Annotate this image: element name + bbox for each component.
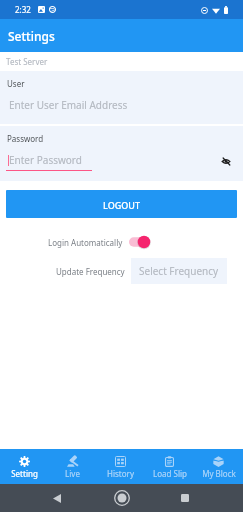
staticText: LOGOUT: [103, 199, 140, 211]
button[interactable]: Select Frequency: [131, 258, 227, 284]
staticText: History: [107, 468, 134, 479]
staticText: Live: [65, 468, 80, 479]
button[interactable]: Load Slip: [145, 449, 194, 484]
staticText: User: [7, 78, 25, 89]
button[interactable]: [129, 235, 151, 249]
staticText: Setting: [11, 468, 38, 479]
staticText: Update Frequency: [56, 266, 125, 277]
button[interactable]: LOGOUT: [6, 190, 237, 218]
staticText: Password: [7, 133, 44, 144]
staticText: Login Automatically: [48, 237, 123, 248]
button[interactable]: Back: [47, 488, 67, 508]
button[interactable]: Recents: [175, 488, 195, 508]
button[interactable]: Show password: [217, 152, 235, 170]
staticText: Load Slip: [153, 468, 187, 479]
staticText: Settings: [8, 28, 55, 44]
button[interactable]: History: [96, 449, 145, 484]
staticText: Test Server: [6, 56, 48, 67]
staticText: My Block: [202, 468, 236, 479]
button[interactable]: Home: [111, 487, 133, 509]
staticText: Enter User Email Address: [9, 98, 128, 112]
button[interactable]: My Block: [194, 449, 243, 484]
button[interactable]: Setting: [0, 449, 48, 484]
staticText: Enter Password: [9, 153, 82, 167]
button[interactable]: Live: [48, 449, 96, 484]
staticText: 2:32: [15, 4, 31, 15]
staticText: Select Frequency: [139, 264, 219, 278]
